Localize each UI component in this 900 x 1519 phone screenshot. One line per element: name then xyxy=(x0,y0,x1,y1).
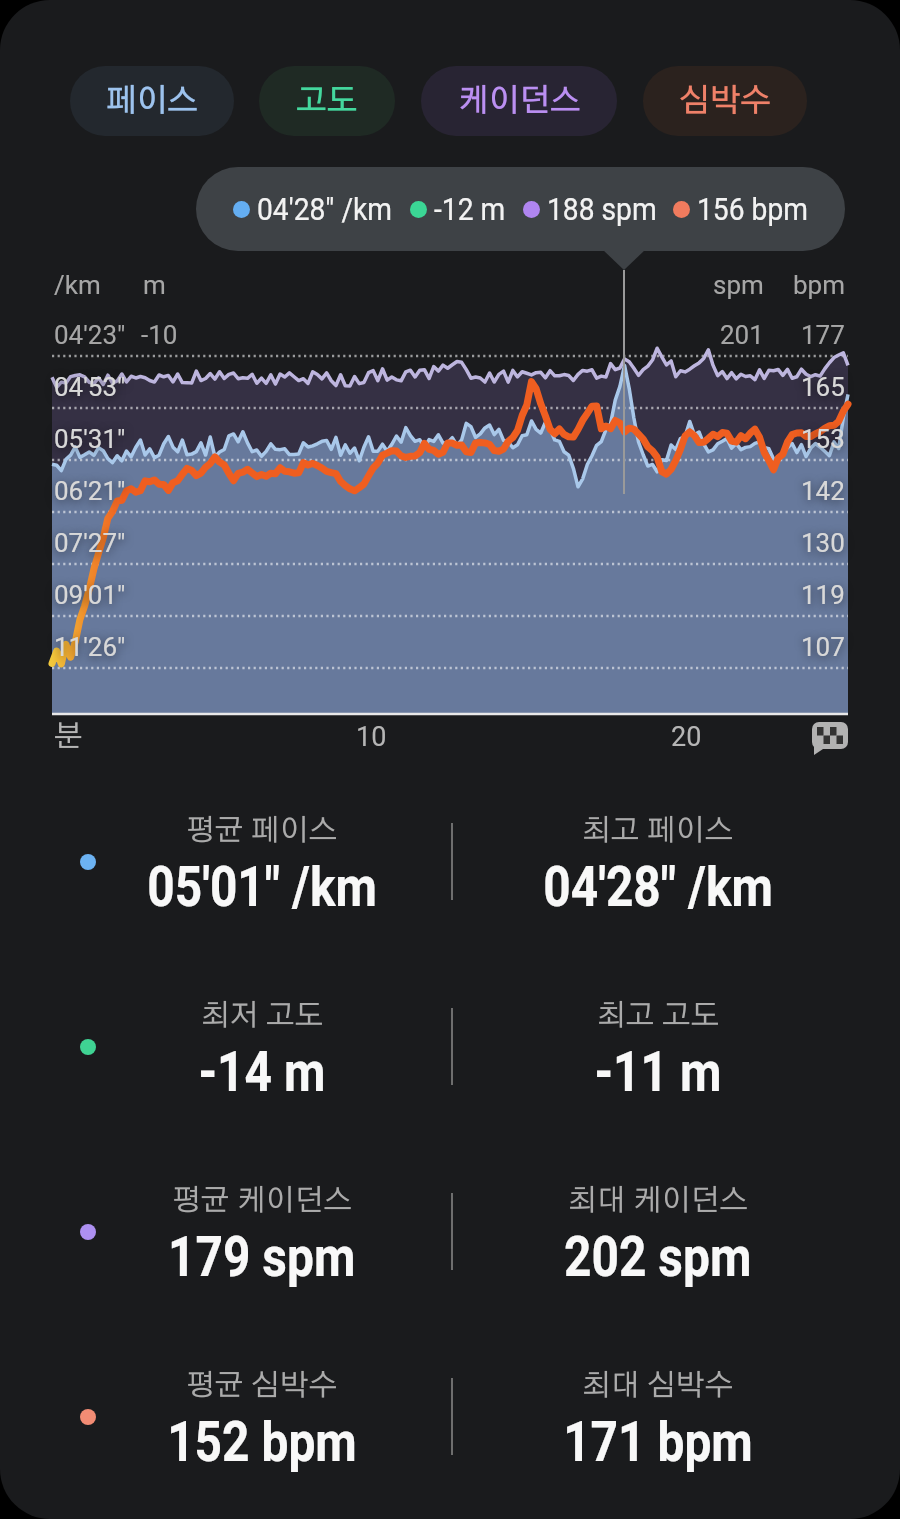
staticText: 142 xyxy=(801,476,845,506)
staticText: 11'26" xyxy=(54,632,126,662)
staticText: 130 xyxy=(801,528,845,558)
staticText: 평균 심박수 xyxy=(186,1371,338,1401)
staticText: -11 m xyxy=(594,1040,721,1102)
button[interactable]: 케이던스 xyxy=(421,66,617,136)
staticText: 심박수 xyxy=(679,85,771,117)
staticText: 05'01" /km xyxy=(147,855,378,917)
staticText: 10 xyxy=(356,721,387,753)
staticText: 202 spm xyxy=(564,1225,752,1287)
staticText: 최고 페이스 xyxy=(582,816,734,846)
staticText: 04'53" xyxy=(54,372,126,402)
staticText: 평균 페이스 xyxy=(186,816,338,846)
staticText: spm xyxy=(713,270,764,300)
staticText: -10 xyxy=(141,320,178,350)
staticText: 06'21" xyxy=(54,476,126,506)
staticText: 09'01" xyxy=(54,580,126,610)
button[interactable]: 심박수 xyxy=(643,66,807,136)
staticText: 04'23" xyxy=(54,320,126,350)
staticText: 119 xyxy=(801,580,845,610)
button[interactable]: 평균 페이스 xyxy=(102,810,422,852)
staticText: /km xyxy=(54,270,101,300)
button[interactable]: 최저 고도 xyxy=(102,995,422,1037)
staticText: m xyxy=(143,270,166,300)
staticText: 페이스 xyxy=(106,85,198,117)
staticText: 평균 케이던스 xyxy=(172,1186,353,1216)
staticText: 04'28" /km xyxy=(543,855,774,917)
button[interactable]: 최대 심박수 xyxy=(498,1365,818,1407)
staticText: bpm xyxy=(793,270,845,300)
button[interactable]: 최고 페이스 xyxy=(498,810,818,852)
staticText: 분 xyxy=(54,722,83,752)
staticText: 165 xyxy=(801,372,845,402)
staticText: 201 xyxy=(720,320,764,350)
staticText: 188 spm xyxy=(547,191,657,227)
staticText: 179 spm xyxy=(168,1225,356,1287)
button[interactable]: 평균 심박수 xyxy=(102,1365,422,1407)
staticText: -14 m xyxy=(198,1040,325,1102)
button[interactable]: 페이스 xyxy=(70,66,234,136)
staticText: 20 xyxy=(671,721,702,753)
button[interactable]: 최고 고도 xyxy=(498,995,818,1037)
button[interactable]: 최대 케이던스 xyxy=(498,1180,818,1222)
staticText: 153 xyxy=(801,424,845,454)
staticText: 최대 케이던스 xyxy=(568,1186,749,1216)
staticText: 최저 고도 xyxy=(201,1001,324,1031)
button[interactable]: 평균 케이던스 xyxy=(102,1180,422,1222)
button[interactable]: 고도 xyxy=(259,66,395,136)
staticText: 152 bpm xyxy=(167,1410,357,1472)
staticText: 107 xyxy=(801,632,845,662)
staticText: 156 bpm xyxy=(697,191,808,227)
staticText: 05'31" xyxy=(54,424,126,454)
staticText: 케이던스 xyxy=(458,85,581,117)
staticText: 177 xyxy=(801,320,845,350)
staticText: 최고 고도 xyxy=(597,1001,720,1031)
staticText: 171 bpm xyxy=(563,1410,753,1472)
staticText: 최대 심박수 xyxy=(582,1371,734,1401)
staticText: -12 m xyxy=(434,191,506,227)
staticText: 04'28" /km xyxy=(257,191,393,227)
staticText: 07'27" xyxy=(54,528,126,558)
staticText: 고도 xyxy=(296,85,358,117)
